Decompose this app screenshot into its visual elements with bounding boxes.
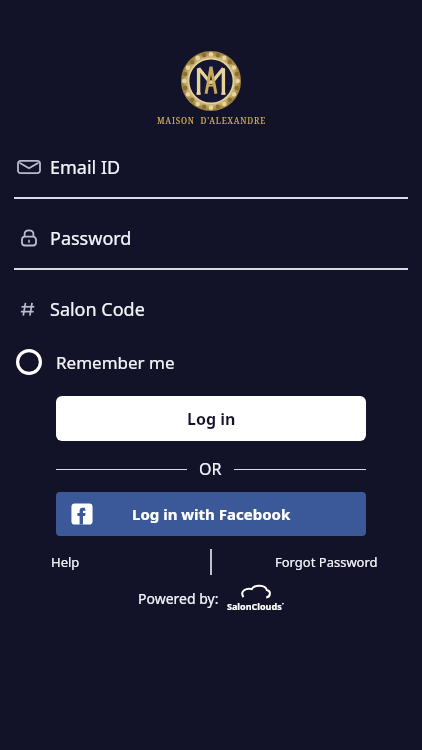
button[interactable]: Forgot Password [212, 546, 422, 578]
staticText: Log in with Facebook [132, 504, 291, 524]
button[interactable]: Facebook [56, 492, 366, 536]
staticText: SalonClouds˙ [227, 600, 284, 612]
button[interactable]: Log in [56, 396, 366, 441]
button[interactable]: Remember me [0, 340, 422, 384]
staticText: Email ID [50, 155, 121, 180]
staticText: Forgot Password [275, 553, 378, 571]
staticText: Salon Code [50, 297, 145, 322]
staticText: OR [199, 458, 222, 480]
button[interactable]: Salon code [0, 290, 422, 328]
button[interactable]: Email [0, 148, 422, 199]
button[interactable]: Help [0, 546, 210, 578]
other: Maison d'Alexandre logo [180, 50, 242, 112]
staticText: Remember me [56, 351, 175, 374]
staticText: Powered by: [138, 589, 219, 608]
button[interactable]: Password [0, 219, 422, 270]
staticText: MAISON D'ALEXANDRE [157, 115, 266, 126]
other: Password [18, 227, 40, 249]
staticText: Log in [187, 408, 236, 430]
other: Facebook [70, 502, 94, 526]
other: Email [18, 156, 40, 178]
staticText: Password [50, 226, 132, 251]
other: Salon code [18, 298, 40, 320]
staticText: Help [51, 553, 80, 571]
